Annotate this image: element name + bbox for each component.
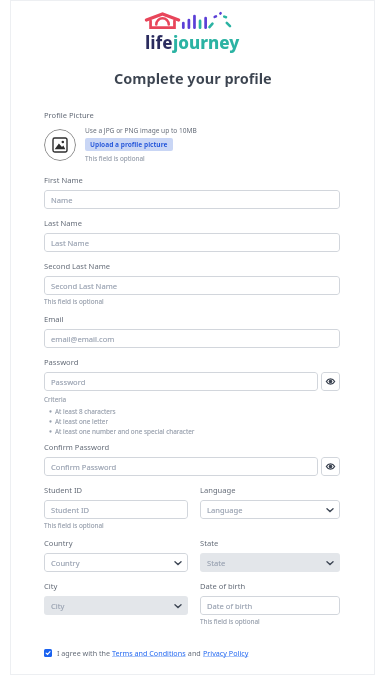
button[interactable]: Upload a profile picture [85,138,173,151]
staticText: Second Last Name [51,281,118,291]
staticText: Country [51,558,80,568]
button[interactable]: Country [44,553,188,572]
button[interactable]: Name [44,190,340,209]
staticText: I agree with the [57,648,112,658]
staticText: Date of birth [200,581,246,591]
staticText: Last Name [51,238,90,248]
staticText: Confirm Password [51,462,117,472]
staticText: and [186,648,203,658]
button[interactable]: Student ID [44,500,188,519]
button[interactable]: Date of birth [200,596,340,615]
button[interactable]: email@email.com [44,329,340,348]
staticText: Profile Picture [44,110,94,120]
staticText: Last Name [44,218,83,228]
button[interactable]: Profile picture [44,129,76,161]
staticText: journey [173,31,240,54]
staticText: Language [207,505,243,515]
button[interactable]: Terms and Conditions [112,648,186,658]
staticText: State [200,538,219,548]
staticText: Email [44,314,64,324]
button[interactable]: Show password [321,372,340,391]
staticText: Terms and Conditions [112,648,186,658]
staticText: City [51,601,65,611]
staticText: Password [51,377,86,387]
staticText: Use a JPG or PNG image up to 10MB [85,126,197,135]
staticText: This field is optional [200,617,260,626]
staticText: Password [44,357,79,367]
staticText: At least 8 characters [55,407,116,416]
staticText: Upload a profile picture [90,140,168,149]
button[interactable]: Second Last Name [44,276,340,295]
staticText: Confirm Password [44,442,110,452]
staticText: Privacy Policy [203,648,249,658]
button[interactable]: Show password [321,457,340,476]
staticText: Date of birth [207,601,253,611]
staticText: Language [200,485,236,495]
staticText: At least one letter [55,417,109,426]
staticText: First Name [44,175,83,185]
staticText: Student ID [51,505,90,515]
staticText: email@email.com [51,334,115,344]
button[interactable]: Privacy Policy [203,648,249,658]
button[interactable]: I agree checkbox [44,649,52,657]
staticText: Second Last Name [44,261,111,271]
button[interactable]: Password [44,372,318,391]
staticText: At least one number and one special char… [55,427,195,436]
staticText: City [44,581,58,591]
button[interactable]: Confirm Password [44,457,318,476]
staticText: Country [44,538,73,548]
staticText: Complete your profile [114,68,272,88]
staticText: Student ID [44,485,83,495]
button[interactable]: State [200,553,340,572]
staticText: This field is optional [85,154,145,163]
staticText: Criteria [44,395,67,404]
button[interactable]: City [44,596,188,615]
staticText: Name [51,195,73,205]
staticText: This field is optional [44,297,104,306]
button[interactable]: Last Name [44,233,340,252]
staticText: State [207,558,226,568]
staticText: This field is optional [44,521,104,530]
button[interactable]: Language [200,500,340,519]
staticText: life [145,31,173,54]
